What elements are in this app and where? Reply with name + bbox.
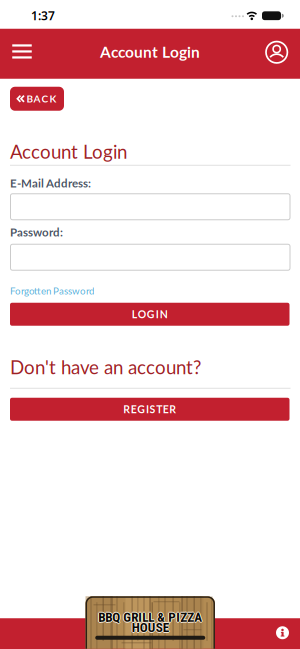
staticText: Account Login (10, 140, 127, 163)
button[interactable] (266, 41, 288, 64)
staticText: REGISTER (123, 403, 176, 416)
button[interactable]: Forgotten Password (10, 285, 94, 297)
button[interactable]: BBQ GRILL & PIZZA (85, 596, 215, 649)
staticText: LOGIN (132, 308, 168, 321)
staticText: HOUSE (132, 620, 169, 635)
staticText: Account Login (100, 42, 200, 61)
button[interactable]: LOGIN (10, 303, 289, 326)
staticText: HOUSE (133, 620, 170, 635)
button[interactable] (0, 29, 44, 79)
staticText: Password: (10, 225, 63, 239)
staticText: Forgotten Password (10, 285, 94, 297)
staticText: BACK (27, 93, 57, 105)
staticText: BBQ GRILL & PIZZA (97, 609, 201, 625)
staticText: 1:37 (31, 8, 55, 24)
staticText: Don't have an account? (10, 356, 201, 378)
staticText: BBQ GRILL & PIZZA (98, 610, 202, 626)
button[interactable] (276, 626, 289, 639)
staticText: HOUSE (132, 619, 169, 634)
staticText: BBQ GRILL & PIZZA (98, 608, 202, 624)
staticText: BBQ GRILL & PIZZA (98, 609, 202, 625)
staticText: HOUSE (131, 620, 168, 635)
staticText: BBQ GRILL & PIZZA (99, 609, 203, 625)
button[interactable]: REGISTER (10, 398, 289, 421)
staticText: HOUSE (132, 621, 169, 636)
staticText: E-Mail Address: (10, 176, 91, 190)
button[interactable]: BACK (10, 87, 64, 111)
